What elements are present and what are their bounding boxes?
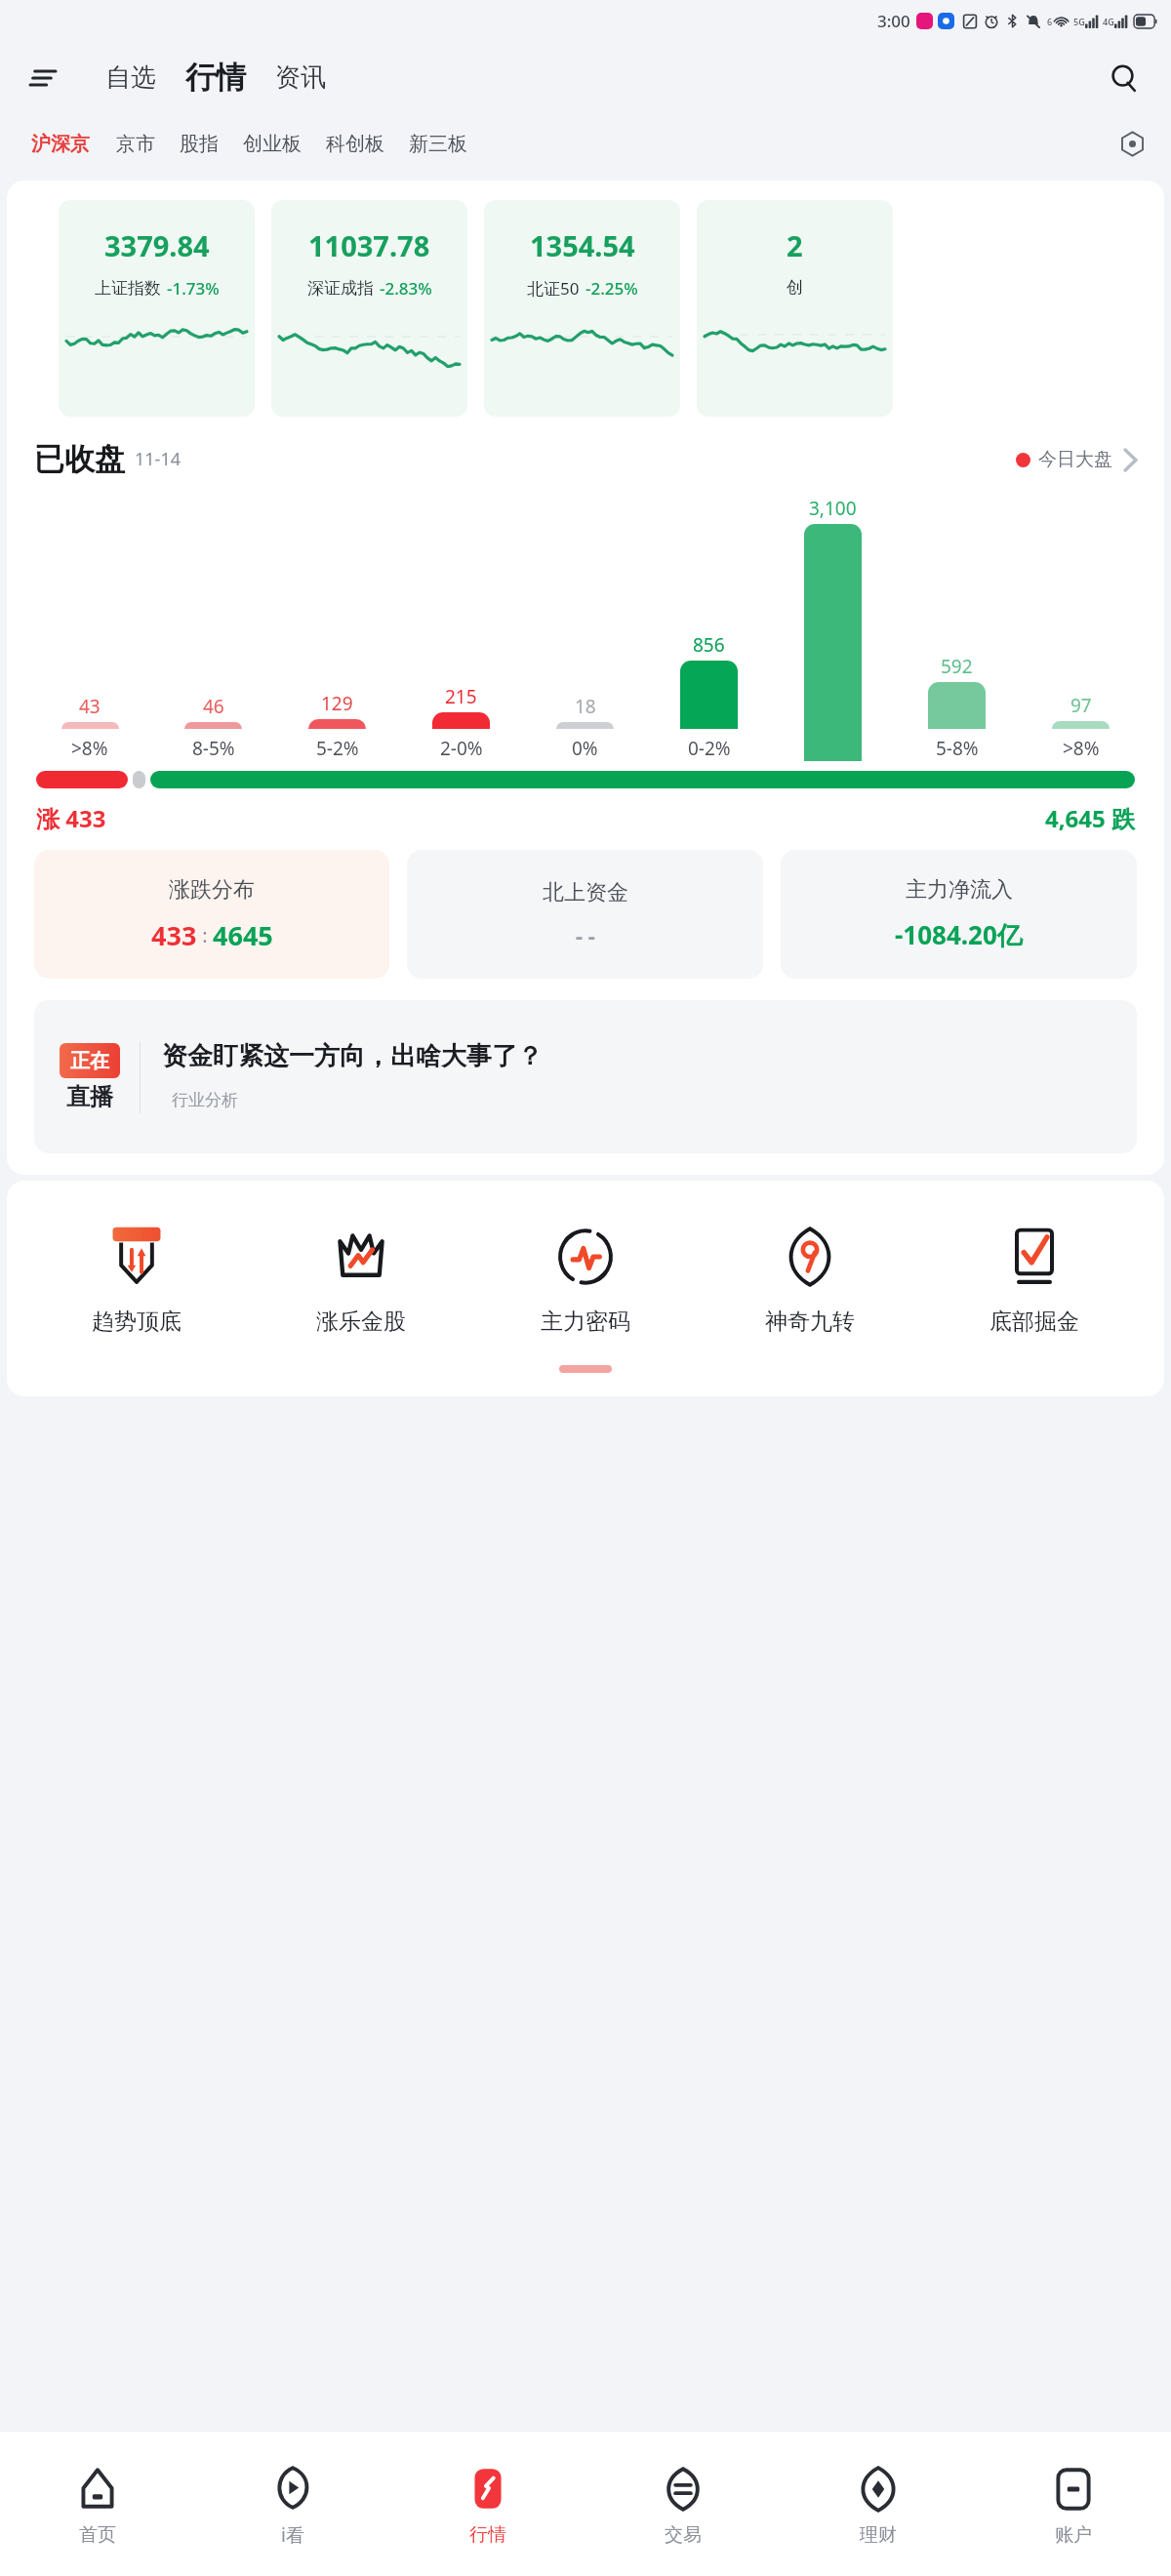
staticText: 433 [151,917,197,953]
button[interactable]: 趋势顶底 [24,1220,249,1336]
staticText: 3379.84 [104,226,210,264]
staticText: 行情 [469,2523,506,2547]
staticText: 资金盯紧这一方向，出啥大事了？ [162,1040,543,1072]
button[interactable]: 京市 [112,124,159,164]
staticText: -2.25% [585,277,638,300]
button[interactable]: 创业板 [239,124,305,164]
staticText: 215 [445,684,477,709]
staticText: 深证成指 [307,278,374,299]
button[interactable]: 46 [151,694,275,761]
button[interactable]: 18 [523,694,647,761]
button[interactable]: 215 [399,684,523,761]
staticText: 涨 433 [36,802,106,834]
staticText: 首页 [79,2523,116,2547]
staticText: 趋势顶底 [92,1308,182,1336]
staticText: 底部掘金 [989,1308,1079,1336]
button[interactable]: 神奇九转 [698,1220,922,1336]
staticText: 43 [79,694,101,719]
staticText: 6 [1047,16,1053,27]
staticText: 理财 [860,2523,897,2547]
staticText: 1354.54 [530,226,635,264]
staticText: 129 [321,691,353,716]
button[interactable]: Menu [21,57,64,100]
button[interactable]: 涨跌分布 [34,850,389,979]
staticText: 856 [693,632,725,658]
staticText: 行业分析 [172,1090,238,1110]
button[interactable]: 1354.54 [484,200,680,417]
button[interactable]: 涨乐金股 [249,1220,473,1336]
staticText: 北证50 [527,277,580,300]
button[interactable]: 97 [1019,693,1143,761]
staticText: 3,100 [809,496,857,521]
button[interactable]: 新三板 [405,124,471,164]
button[interactable]: 今日大盘 [1016,448,1137,471]
staticText: 11-14 [135,447,181,471]
button[interactable]: Search [1101,55,1148,101]
staticText: 18 [575,694,596,719]
button[interactable]: 129 [275,691,399,761]
button[interactable]: 11037.78 [271,200,467,417]
button[interactable]: 856 [647,632,771,761]
button[interactable]: 3,100 [771,496,895,761]
staticText: 行情 [185,59,246,97]
staticText: 涨跌分布 [169,876,255,904]
button[interactable]: 主力净流入 [781,850,1137,979]
button[interactable]: 自选 [98,56,164,100]
button[interactable]: 首页 [0,2432,195,2576]
button[interactable]: i看 [195,2432,390,2576]
staticText: 股指 [180,132,219,156]
staticText: >8% [1063,736,1100,761]
staticText: 3:00 [877,10,910,32]
button[interactable]: 北上资金 [407,850,763,979]
staticText: 正在 [70,1049,109,1073]
staticText: : [197,922,213,948]
button[interactable]: 2 [697,200,893,417]
staticText: 直播 [66,1082,113,1111]
button[interactable]: 正在 [34,1000,1137,1153]
staticText: 4,645 跌 [1045,802,1135,834]
staticText: 神奇九转 [765,1308,855,1336]
button[interactable]: 底部掘金 [922,1220,1147,1336]
staticText: 2-0% [440,736,483,761]
staticText: 11037.78 [308,226,430,264]
button[interactable]: 行情 [390,2432,585,2576]
staticText: 5G [1073,16,1085,27]
staticText: 46 [203,694,224,719]
button[interactable]: 交易 [585,2432,781,2576]
staticText: 8-5% [192,736,235,761]
staticText: 592 [941,654,973,679]
button[interactable]: Settings [1110,122,1153,165]
staticText: 2 [787,226,803,264]
button[interactable]: 科创板 [322,124,388,164]
staticText: 已收盘 [34,440,125,478]
staticText: 交易 [665,2523,702,2547]
staticText: 京市 [116,132,155,156]
staticText: 4G [1103,16,1114,27]
button[interactable]: 43 [28,694,151,761]
staticText: 创 [787,277,803,298]
button[interactable]: 股指 [176,124,222,164]
staticText: 账户 [1055,2523,1092,2547]
staticText: -1.73% [167,277,220,300]
staticText: 97 [1070,693,1092,718]
staticText: >8% [71,736,108,761]
button[interactable]: 3379.84 [59,200,255,417]
staticText: i看 [281,2522,304,2548]
button[interactable]: 沪深京 [25,124,96,164]
button[interactable]: 资讯 [267,56,334,100]
staticText: 北上资金 [543,879,628,906]
button[interactable]: 行情 [178,55,254,101]
staticText: 0-2% [688,736,731,761]
staticText: 涨乐金股 [316,1308,406,1336]
button[interactable]: 主力密码 [473,1220,698,1336]
staticText: 新三板 [409,132,467,156]
button[interactable]: 账户 [976,2432,1171,2576]
staticText: 科创板 [326,132,384,156]
staticText: 自选 [105,61,156,94]
button[interactable]: 理财 [781,2432,976,2576]
staticText: -1084.20亿 [895,917,1023,952]
staticText: 今日大盘 [1038,448,1112,471]
button[interactable]: 592 [895,654,1019,761]
staticText: 上证指数 [95,278,161,299]
staticText: 主力净流入 [906,876,1013,904]
